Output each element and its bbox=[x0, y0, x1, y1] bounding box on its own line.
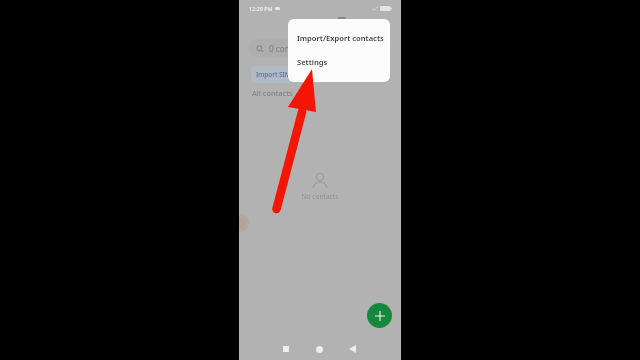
staticText: 0 bbox=[299, 88, 304, 98]
staticText: All contacts bbox=[252, 88, 293, 98]
staticText: No contacts bbox=[239, 192, 401, 201]
button[interactable]: 0 contacts bbox=[249, 39, 391, 57]
staticText: 0 contacts bbox=[269, 43, 309, 54]
button[interactable]: Import SIM contacts bbox=[251, 66, 324, 83]
staticText: 12:29 PM bbox=[249, 5, 273, 12]
staticText: Import SIM contacts bbox=[256, 70, 319, 79]
button[interactable]: Settings bbox=[288, 51, 390, 82]
button[interactable]: Import/Export contacts bbox=[288, 19, 390, 51]
staticText: Settings bbox=[297, 57, 328, 67]
button[interactable]: Recents bbox=[276, 339, 296, 359]
staticText: Import/Export contacts bbox=[297, 33, 384, 43]
button[interactable]: Home bbox=[309, 339, 329, 359]
button[interactable]: Add contact bbox=[367, 303, 392, 328]
button[interactable]: Back bbox=[342, 339, 362, 359]
